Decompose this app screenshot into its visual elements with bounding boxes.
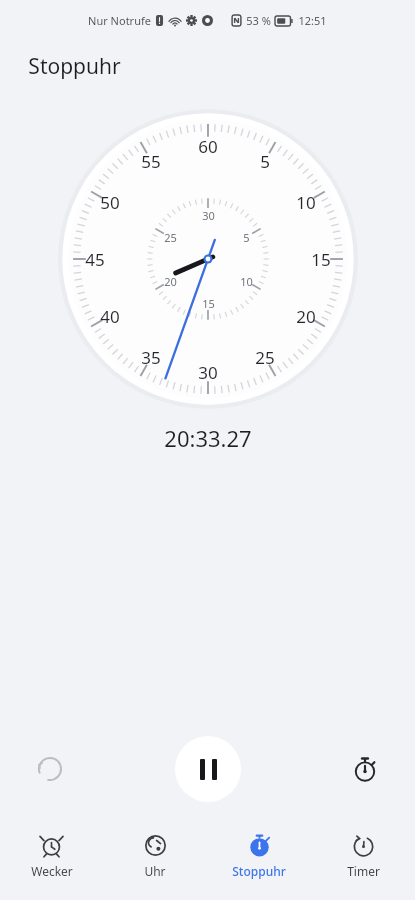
staticText: 55 <box>141 150 161 173</box>
staticText: 25 <box>255 346 275 369</box>
button[interactable]: Timer <box>311 830 415 883</box>
button[interactable]: Uhr <box>103 830 207 883</box>
button[interactable]: Zurücksetzen <box>18 737 82 801</box>
staticText: 53 % <box>246 13 271 28</box>
staticText: 35 <box>141 346 161 369</box>
staticText: 25 <box>164 230 177 245</box>
staticText: 20:33.27 <box>164 423 252 453</box>
button[interactable]: Pause <box>175 736 241 802</box>
staticText: 15 <box>311 248 331 271</box>
staticText: Stoppuhr <box>232 863 286 879</box>
staticText: Timer <box>347 863 380 879</box>
staticText: 10 <box>240 274 253 289</box>
staticText: 50 <box>100 191 120 214</box>
button[interactable]: Wecker <box>0 830 103 883</box>
staticText: Wecker <box>31 863 73 879</box>
staticText: 5 <box>260 150 270 173</box>
staticText: 5 <box>243 230 250 245</box>
staticText: 30 <box>198 361 218 384</box>
staticText: 45 <box>85 248 105 271</box>
button[interactable]: Runde <box>333 737 397 801</box>
staticText: 30 <box>202 208 215 223</box>
staticText: 10 <box>296 191 316 214</box>
staticText: 15 <box>202 296 215 311</box>
staticText: Stoppuhr <box>28 52 121 81</box>
staticText: 40 <box>100 305 120 328</box>
staticText: 20 <box>296 305 316 328</box>
staticText: 20 <box>164 274 177 289</box>
button[interactable]: Stoppuhr <box>207 830 311 883</box>
staticText: 12:51 <box>298 13 327 28</box>
staticText: Nur Notrufe <box>88 13 151 28</box>
staticText: 60 <box>198 135 218 158</box>
staticText: Uhr <box>144 863 166 879</box>
